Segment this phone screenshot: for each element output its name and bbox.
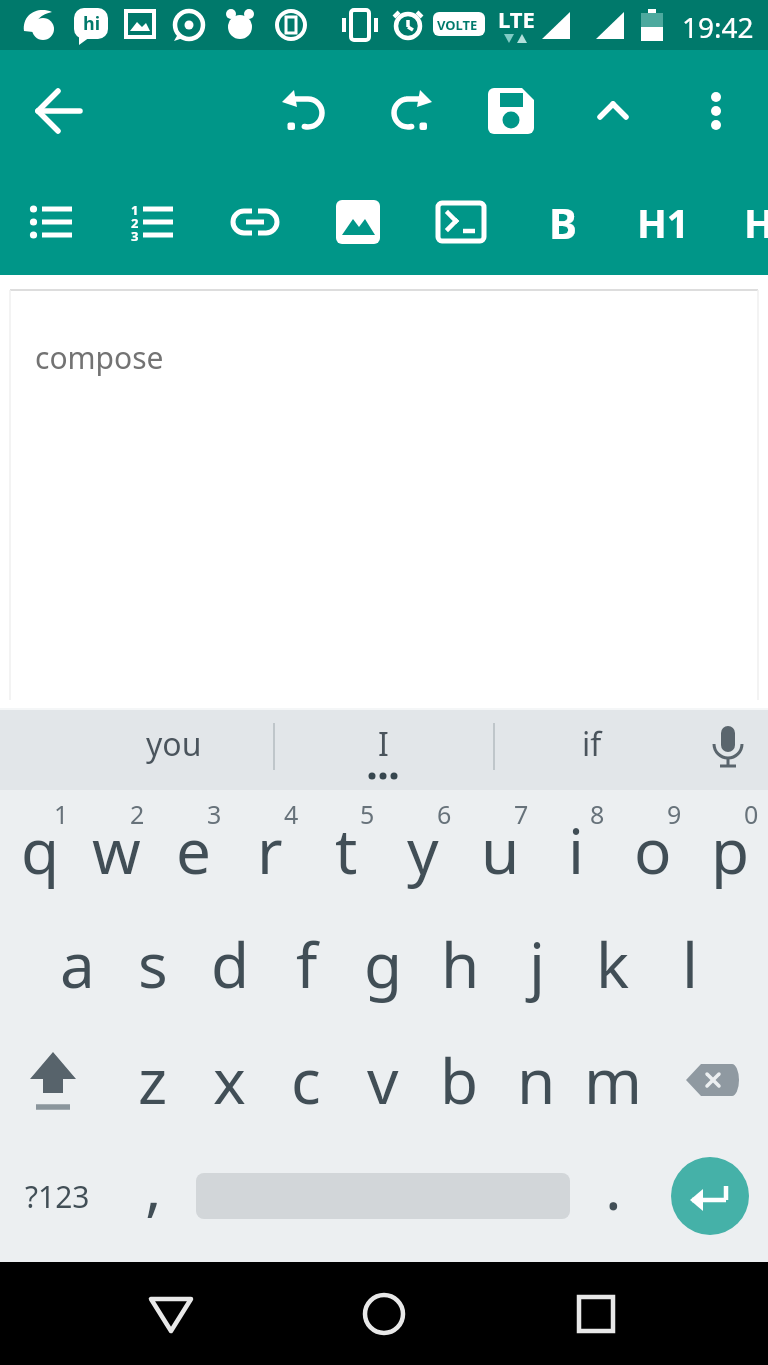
button[interactable]: u [463, 795, 537, 905]
button[interactable] [688, 83, 744, 139]
button[interactable]: x [192, 1024, 266, 1136]
button[interactable]: t [309, 795, 383, 905]
button[interactable]: a [40, 908, 114, 1020]
button[interactable]: 1 [124, 194, 180, 250]
button[interactable]: 9 [659, 797, 689, 831]
button[interactable]: k [576, 908, 650, 1020]
staticText: H [744, 196, 768, 249]
button[interactable]: y [386, 795, 460, 905]
button[interactable]: q [3, 795, 77, 905]
button[interactable]: if [517, 709, 667, 779]
staticText: l [682, 922, 698, 1006]
button[interactable] [31, 83, 87, 139]
staticText: , [145, 1144, 162, 1228]
button[interactable] [330, 194, 386, 250]
staticText: j [529, 922, 545, 1006]
button[interactable]: g [346, 908, 420, 1020]
button[interactable]: 6 [429, 797, 459, 831]
button[interactable] [344, 1274, 424, 1354]
button[interactable] [227, 194, 283, 250]
button[interactable]: 7 [506, 797, 536, 831]
staticText: 3 [207, 797, 222, 831]
button[interactable]: 8 [582, 797, 612, 831]
staticText: 5 [360, 797, 375, 831]
button[interactable] [672, 1040, 752, 1120]
button[interactable]: H1 [618, 186, 708, 258]
button[interactable]: 4 [276, 797, 306, 831]
button[interactable]: 5 [352, 797, 382, 831]
staticText: w [92, 808, 141, 892]
staticText: 8 [590, 797, 605, 831]
button[interactable]: s [116, 908, 190, 1020]
button[interactable] [433, 194, 489, 250]
staticText: 19:42 [682, 8, 754, 46]
button[interactable]: 0 [736, 797, 766, 831]
button[interactable] [279, 83, 335, 139]
button[interactable]: H [734, 186, 768, 258]
button[interactable]: v [346, 1024, 420, 1136]
staticText: p [711, 808, 750, 892]
button[interactable]: 3 [199, 797, 229, 831]
staticText: 7 [514, 797, 529, 831]
button[interactable]: i [539, 795, 613, 905]
staticText: I [378, 722, 389, 766]
button[interactable] [13, 1038, 93, 1118]
staticText: n [517, 1038, 556, 1122]
button[interactable] [379, 83, 435, 139]
button[interactable] [671, 1157, 749, 1235]
button[interactable]: r [233, 795, 307, 905]
button[interactable]: z [116, 1024, 190, 1136]
staticText: 4 [284, 797, 299, 831]
staticText: compose [35, 337, 164, 378]
button[interactable]: o [616, 795, 690, 905]
button[interactable]: d [193, 908, 267, 1020]
button[interactable] [556, 1274, 636, 1354]
staticText: h [441, 922, 480, 1006]
staticText: e [176, 808, 211, 892]
button[interactable]: n [499, 1024, 573, 1136]
button[interactable]: w [79, 795, 153, 905]
button[interactable]: 2 [122, 797, 152, 831]
button[interactable]: m [576, 1024, 650, 1136]
button[interactable] [585, 83, 641, 139]
button[interactable]: j [500, 908, 574, 1020]
button[interactable]: I [303, 709, 463, 779]
staticText: y [407, 808, 439, 892]
staticText: 2 [130, 797, 145, 831]
staticText: u [481, 808, 520, 892]
staticText: . [605, 1144, 622, 1228]
staticText: q [21, 808, 60, 892]
staticText: g [364, 922, 403, 1006]
button[interactable]: p [693, 795, 767, 905]
staticText: c [291, 1038, 321, 1122]
staticText: 2 [131, 214, 139, 232]
staticText: b [440, 1038, 479, 1122]
button[interactable]: l [653, 908, 727, 1020]
staticText: x [213, 1038, 246, 1122]
button[interactable]: e [156, 795, 230, 905]
button[interactable] [483, 83, 539, 139]
button[interactable]: f [270, 908, 344, 1020]
staticText: 6 [437, 797, 452, 831]
button[interactable]: b [422, 1024, 496, 1136]
button[interactable]: you [74, 709, 274, 779]
button[interactable]: h [423, 908, 497, 1020]
button[interactable]: c [269, 1024, 343, 1136]
button[interactable] [23, 194, 79, 250]
staticText: 3 [131, 227, 139, 245]
staticText: s [138, 922, 168, 1006]
button[interactable]: B [528, 186, 598, 258]
button[interactable]: 1 [46, 797, 76, 831]
button[interactable] [131, 1274, 211, 1354]
staticText: 9 [667, 797, 682, 831]
button[interactable]: . [578, 1131, 648, 1241]
button[interactable]: ?123 [7, 1146, 107, 1246]
button[interactable]: , [118, 1131, 188, 1241]
staticText: t [335, 808, 358, 892]
staticText: a [60, 922, 95, 1006]
staticText: VOLTE [437, 16, 478, 34]
staticText: 1 [131, 201, 139, 219]
staticText: if [582, 722, 602, 766]
staticText: hi [83, 11, 101, 36]
